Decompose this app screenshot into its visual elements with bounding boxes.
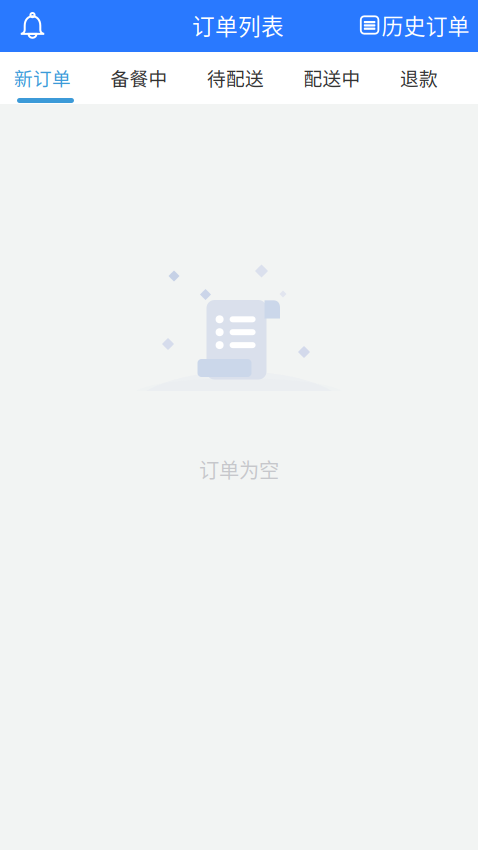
staticText: 配送中 xyxy=(303,64,360,91)
button[interactable]: Notifications xyxy=(0,0,65,52)
staticText: 订单为空 xyxy=(199,454,279,484)
button[interactable]: 备餐中 xyxy=(110,52,167,104)
staticText: 退款 xyxy=(400,64,438,91)
staticText: 历史订单 xyxy=(382,9,470,41)
button[interactable]: 配送中 xyxy=(303,52,360,104)
button[interactable]: 待配送 xyxy=(207,52,264,104)
staticText: 新订单 xyxy=(14,64,71,91)
staticText: 备餐中 xyxy=(110,64,167,91)
button[interactable]: 新订单 xyxy=(14,52,71,104)
button[interactable]: 退款 xyxy=(400,52,438,104)
staticText: 待配送 xyxy=(207,64,264,91)
staticText: 订单列表 xyxy=(192,9,284,41)
button[interactable]: 历史订单 xyxy=(361,0,478,52)
